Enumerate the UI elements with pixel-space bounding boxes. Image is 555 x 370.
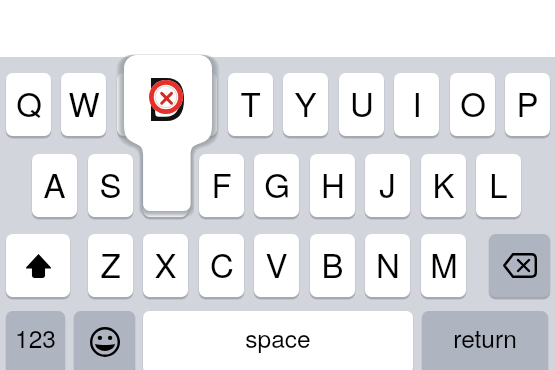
button[interactable]: F: [199, 154, 244, 217]
staticText: H: [321, 160, 345, 207]
button[interactable]: O: [450, 73, 495, 136]
button[interactable]: T: [228, 73, 273, 136]
staticText: return: [453, 320, 517, 355]
button[interactable]: R: [172, 73, 217, 136]
button[interactable]: J: [365, 154, 410, 217]
staticText: V: [265, 240, 288, 287]
button[interactable]: A: [32, 154, 77, 217]
button[interactable]: W: [61, 73, 106, 136]
button[interactable]: S: [88, 154, 133, 217]
staticText: F: [211, 160, 232, 207]
button[interactable]: K: [421, 154, 466, 217]
staticText: I: [412, 79, 422, 126]
button[interactable]: D: [143, 154, 188, 217]
staticText: U: [350, 79, 374, 126]
button[interactable]: space: [143, 311, 413, 370]
button[interactable]: L: [476, 154, 521, 217]
staticText: G: [264, 160, 290, 207]
staticText: O: [460, 79, 486, 126]
button[interactable]: U: [339, 73, 384, 136]
staticText: C: [210, 240, 234, 287]
staticText: X: [154, 240, 177, 287]
staticText: N: [376, 240, 400, 287]
staticText: K: [432, 160, 455, 207]
button[interactable]: B: [310, 234, 355, 297]
button[interactable]: P: [505, 73, 550, 136]
staticText: 123: [15, 320, 56, 355]
staticText: A: [43, 160, 66, 207]
staticText: M: [430, 240, 458, 287]
staticText: T: [240, 79, 261, 126]
button[interactable]: E: [117, 73, 162, 136]
staticText: E: [128, 79, 151, 126]
button[interactable]: H: [310, 154, 355, 217]
staticText: Z: [100, 240, 121, 287]
button[interactable]: 123: [6, 311, 65, 370]
button[interactable]: V: [254, 234, 299, 297]
button[interactable]: G: [254, 154, 299, 217]
staticText: L: [489, 160, 508, 207]
button[interactable]: Delete: [489, 234, 550, 297]
staticText: B: [321, 240, 344, 287]
button[interactable]: Emoji keyboard: [74, 311, 135, 370]
staticText: Y: [294, 79, 317, 126]
button[interactable]: N: [365, 234, 410, 297]
button[interactable]: Q: [6, 73, 51, 136]
button[interactable]: Y: [283, 73, 328, 136]
button[interactable]: I: [394, 73, 439, 136]
staticText: space: [245, 320, 311, 355]
staticText: P: [516, 79, 539, 126]
button[interactable]: Shift: [6, 234, 70, 297]
staticText: S: [99, 160, 122, 207]
button[interactable]: return: [422, 311, 548, 370]
staticText: R: [183, 79, 207, 126]
button[interactable]: X: [143, 234, 188, 297]
button[interactable]: C: [199, 234, 244, 297]
staticText: J: [379, 160, 396, 207]
staticText: Q: [16, 79, 42, 126]
button[interactable]: M: [421, 234, 466, 297]
staticText: W: [68, 79, 100, 126]
button[interactable]: Z: [88, 234, 133, 297]
